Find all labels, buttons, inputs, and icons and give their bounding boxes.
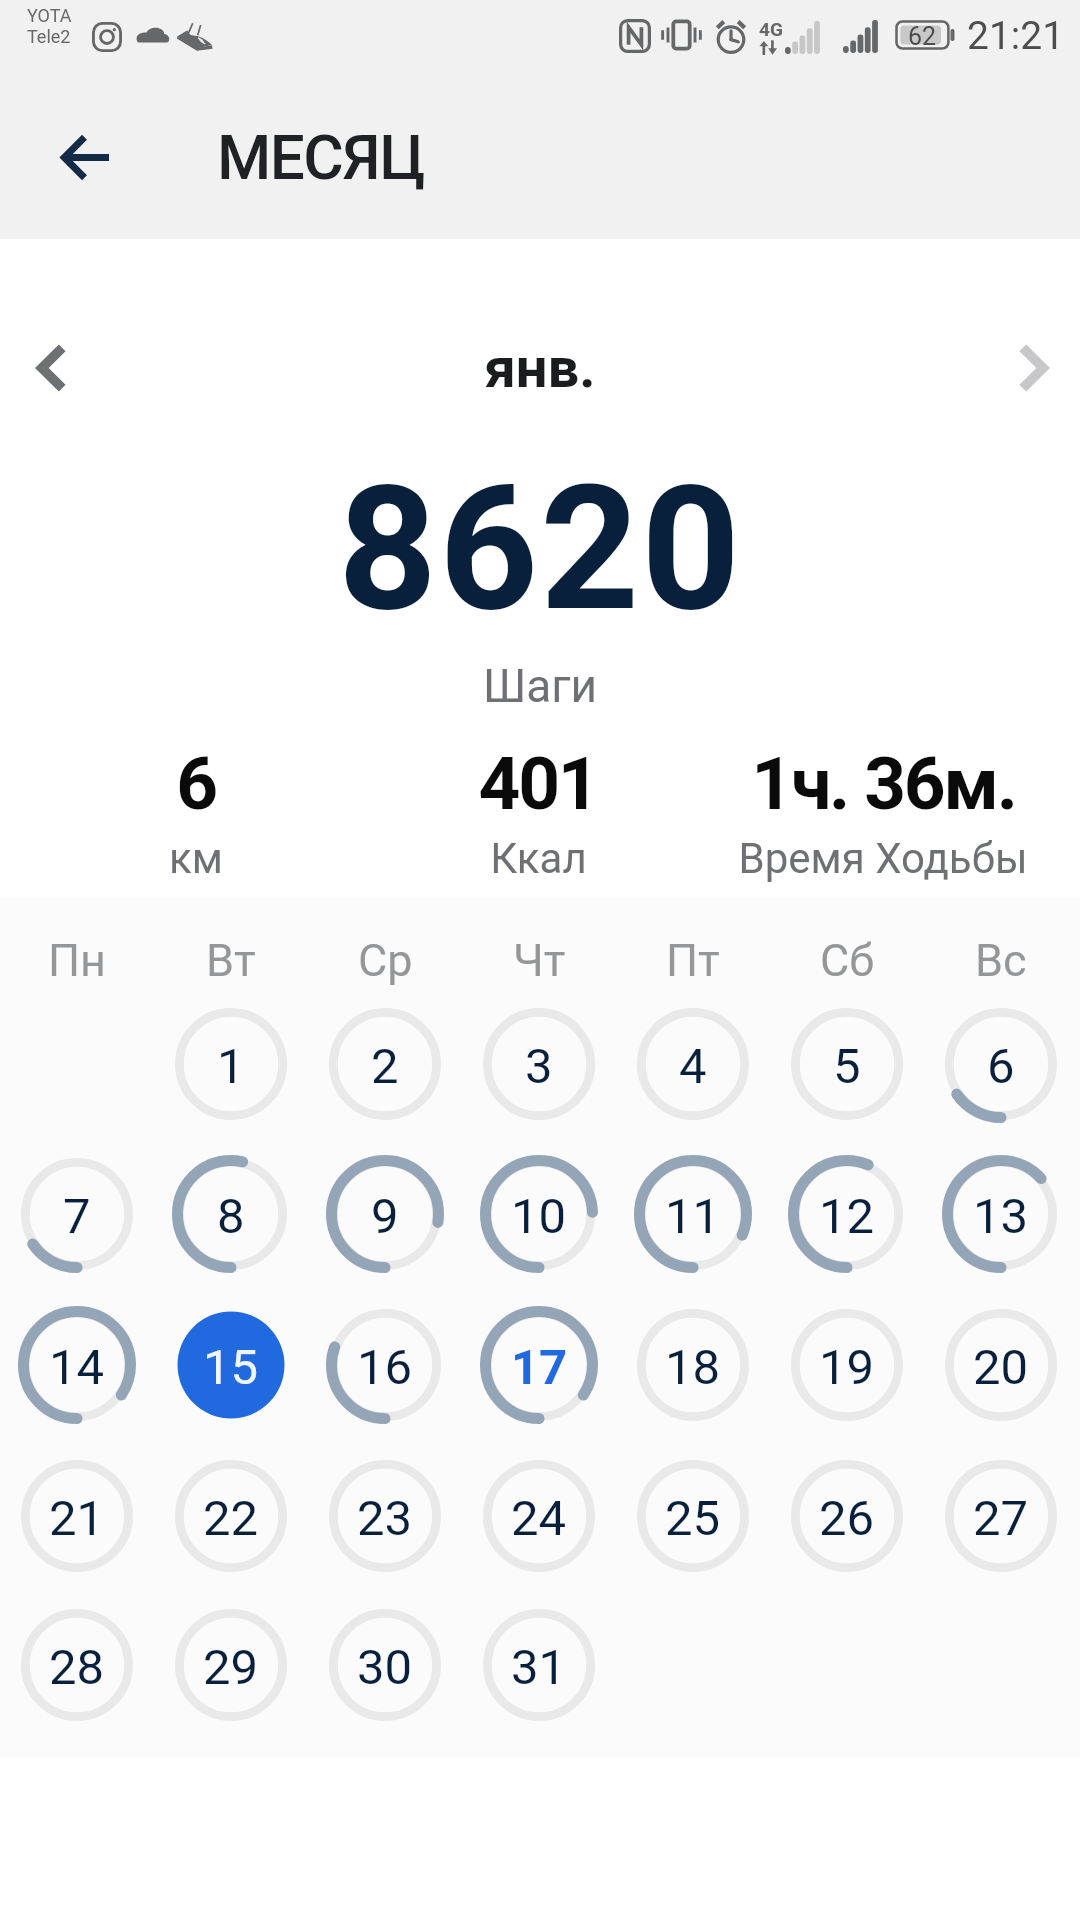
button[interactable]: Previous month — [12, 328, 92, 408]
button[interactable]: Next month — [993, 328, 1073, 408]
staticText: 7 — [63, 1188, 91, 1245]
staticText: Пн — [48, 934, 107, 987]
staticText: 25 — [665, 1490, 721, 1547]
staticText: 401 — [478, 741, 598, 827]
button[interactable]: 4 — [632, 1003, 754, 1125]
button[interactable]: 401 — [348, 741, 728, 883]
staticText: 3 — [525, 1038, 553, 1095]
button[interactable]: 18 — [632, 1304, 754, 1426]
staticText: 13 — [973, 1188, 1029, 1245]
staticText: 14 — [49, 1339, 105, 1396]
staticText: Время Ходьбы — [738, 834, 1028, 883]
staticText: 24 — [511, 1490, 567, 1547]
staticText: Шаги — [0, 659, 1080, 713]
staticText: Вс — [975, 934, 1027, 987]
staticText: Сб — [820, 934, 875, 987]
button[interactable]: 5 — [786, 1003, 908, 1125]
staticText: 21:21 — [967, 13, 1065, 59]
button[interactable]: 29 — [170, 1604, 292, 1726]
button[interactable]: 27 — [940, 1455, 1062, 1577]
staticText: 23 — [357, 1490, 413, 1547]
staticText: 29 — [203, 1639, 259, 1696]
staticText: 11 — [665, 1188, 721, 1245]
staticText: 1ч. 36м. — [751, 741, 1016, 827]
button[interactable]: 28 — [16, 1604, 138, 1726]
staticText: 19 — [819, 1339, 875, 1396]
staticText: 22 — [203, 1490, 259, 1547]
staticText: км — [169, 834, 223, 883]
button[interactable]: 8 — [170, 1153, 292, 1275]
button[interactable]: 3 — [478, 1003, 600, 1125]
staticText: Пт — [666, 934, 720, 987]
staticText: 2 — [371, 1038, 399, 1095]
staticText: 12 — [819, 1188, 875, 1245]
staticText: 18 — [665, 1339, 721, 1396]
button[interactable]: 9 — [324, 1153, 446, 1275]
button[interactable]: 16 — [324, 1304, 446, 1426]
staticText: 9 — [371, 1188, 399, 1245]
button[interactable]: 30 — [324, 1604, 446, 1726]
button[interactable]: 26 — [786, 1455, 908, 1577]
staticText: МЕСЯЦ — [217, 121, 425, 194]
button[interactable]: 7 — [16, 1153, 138, 1275]
button[interactable]: 23 — [324, 1455, 446, 1577]
staticText: 30 — [357, 1639, 413, 1696]
button[interactable]: 25 — [632, 1455, 754, 1577]
staticText: 4 — [679, 1038, 707, 1095]
button[interactable]: Back — [34, 107, 134, 207]
button[interactable]: 15 — [170, 1304, 292, 1426]
staticText: Вт — [206, 934, 256, 987]
staticText: Чт — [513, 934, 566, 987]
staticText: янв. — [0, 335, 1080, 401]
button[interactable]: 17 — [478, 1304, 600, 1426]
staticText: 8620 — [0, 448, 1080, 651]
staticText: 17 — [511, 1339, 568, 1396]
staticText: 28 — [49, 1639, 105, 1696]
button[interactable]: 20 — [940, 1304, 1062, 1426]
button[interactable]: 24 — [478, 1455, 600, 1577]
button[interactable]: 2 — [324, 1003, 446, 1125]
button[interactable]: 12 — [786, 1153, 908, 1275]
staticText: 21 — [49, 1490, 105, 1547]
staticText: YOTA — [27, 5, 72, 26]
staticText: 26 — [819, 1490, 875, 1547]
staticText: 62 — [908, 22, 937, 51]
staticText: Tele2 — [27, 26, 71, 47]
button[interactable]: 1 — [170, 1003, 292, 1125]
button[interactable]: 10 — [478, 1153, 600, 1275]
button[interactable]: 31 — [478, 1604, 600, 1726]
button[interactable]: 6 — [940, 1003, 1062, 1125]
staticText: 6 — [987, 1038, 1015, 1095]
staticText: 5 — [833, 1038, 861, 1095]
staticText: 20 — [973, 1339, 1029, 1396]
staticText: 15 — [203, 1339, 259, 1396]
button[interactable]: 22 — [170, 1455, 292, 1577]
button[interactable]: 14 — [16, 1304, 138, 1426]
staticText: 4G — [759, 18, 783, 40]
staticText: 8 — [217, 1188, 245, 1245]
staticText: Ср — [358, 934, 413, 987]
staticText: 31 — [511, 1639, 567, 1696]
button[interactable]: 21 — [16, 1455, 138, 1577]
button[interactable]: 11 — [632, 1153, 754, 1275]
staticText: 6 — [176, 741, 216, 827]
button[interactable]: 19 — [786, 1304, 908, 1426]
staticText: 27 — [973, 1490, 1029, 1547]
staticText: Ккал — [490, 834, 587, 883]
button[interactable]: 13 — [940, 1153, 1062, 1275]
staticText: 10 — [511, 1188, 567, 1245]
button[interactable]: 6 — [6, 741, 386, 883]
button[interactable]: 1ч. 36м. — [693, 741, 1073, 883]
staticText: 1 — [217, 1038, 245, 1095]
staticText: 16 — [357, 1339, 413, 1396]
